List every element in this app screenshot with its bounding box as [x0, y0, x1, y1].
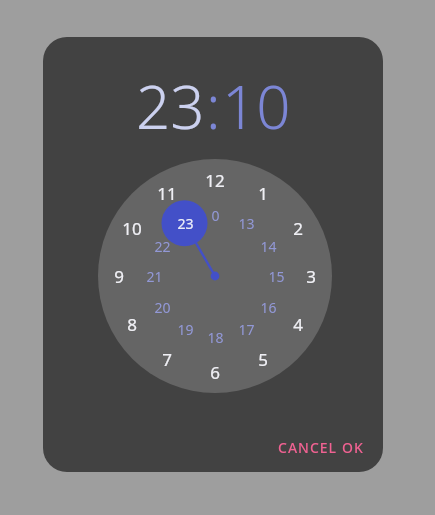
staticText: 8: [127, 313, 137, 336]
staticText: 21: [146, 267, 163, 286]
staticText: 11: [157, 182, 177, 205]
staticText: OK: [342, 438, 364, 457]
button[interactable]: OK: [330, 428, 376, 466]
staticText: 3: [306, 265, 316, 288]
button[interactable]: CANCEL: [265, 428, 351, 466]
button[interactable]: 23: [135, 65, 206, 141]
staticText: 10: [122, 217, 142, 240]
staticText: 12: [205, 169, 225, 192]
staticText: 22: [154, 237, 171, 256]
staticText: 5: [258, 348, 268, 371]
staticText: 0: [211, 206, 220, 225]
staticText: 13: [238, 214, 255, 233]
staticText: 23: [136, 65, 205, 141]
staticText: 10: [222, 65, 291, 141]
staticText: :: [206, 65, 221, 141]
button[interactable]: 10: [221, 65, 292, 141]
staticText: 15: [268, 267, 285, 286]
staticText: 17: [238, 320, 255, 339]
staticText: 23: [177, 214, 194, 233]
button[interactable]: Clock face, hour 23 selected: [43, 37, 383, 472]
staticText: 16: [260, 298, 277, 317]
staticText: 7: [162, 348, 172, 371]
staticText: 2: [293, 217, 303, 240]
staticText: 18: [207, 328, 224, 347]
staticText: 4: [293, 313, 303, 336]
staticText: 19: [177, 320, 194, 339]
staticText: 20: [154, 298, 171, 317]
staticText: CANCEL: [278, 438, 338, 457]
staticText: 14: [260, 237, 277, 256]
staticText: 9: [114, 265, 124, 288]
staticText: 6: [210, 361, 220, 384]
staticText: 1: [258, 182, 268, 205]
